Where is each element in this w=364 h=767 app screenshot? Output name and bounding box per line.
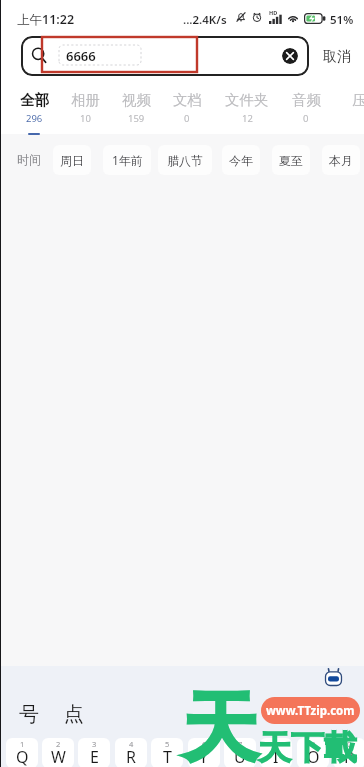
button[interactable]: 今年 bbox=[222, 145, 260, 175]
button[interactable]: 夏至 bbox=[272, 145, 310, 175]
staticText: 7 bbox=[238, 739, 243, 749]
staticText: 号 bbox=[19, 702, 39, 727]
staticText: U bbox=[234, 746, 246, 767]
staticText: 上午11:22 bbox=[17, 11, 75, 28]
button[interactable]: 7 bbox=[224, 738, 256, 767]
staticText: 相册 bbox=[71, 91, 100, 109]
staticText: 音频 bbox=[292, 91, 321, 109]
button[interactable]: 文件夹 bbox=[220, 91, 274, 133]
staticText: T bbox=[163, 746, 172, 767]
button[interactable]: 周日 bbox=[53, 145, 91, 175]
staticText: 1年前 bbox=[112, 152, 143, 168]
staticText: HD bbox=[269, 9, 278, 16]
staticText: 点 bbox=[64, 702, 84, 727]
staticText: 12 bbox=[242, 112, 253, 125]
staticText: I bbox=[273, 746, 279, 767]
staticText: ...2.4K/s bbox=[183, 12, 227, 28]
button[interactable]: 音频 bbox=[279, 91, 333, 133]
staticText: R bbox=[126, 746, 136, 767]
staticText: 本月 bbox=[329, 153, 353, 168]
button[interactable]: 文档 bbox=[160, 91, 214, 133]
staticText: 159 bbox=[128, 112, 145, 125]
staticText: 6 bbox=[202, 739, 207, 749]
staticText: 8 bbox=[274, 739, 279, 749]
staticText: 文件夹 bbox=[225, 91, 269, 109]
button[interactable]: 6666 bbox=[21, 36, 309, 76]
staticText: Y bbox=[199, 746, 209, 767]
staticText: 今年 bbox=[229, 153, 253, 168]
button[interactable]: 9 bbox=[297, 738, 329, 767]
button[interactable]: 全部 bbox=[7, 91, 61, 135]
staticText: 10 bbox=[80, 112, 91, 125]
staticText: 文档 bbox=[173, 91, 202, 109]
button[interactable]: 4 bbox=[115, 738, 147, 767]
button[interactable]: 号 bbox=[19, 702, 39, 727]
staticText: 周日 bbox=[60, 153, 84, 168]
staticText: W bbox=[51, 746, 66, 767]
staticText: 296 bbox=[26, 112, 43, 125]
staticText: 3 bbox=[92, 739, 97, 749]
staticText: 腊八节 bbox=[167, 153, 203, 168]
staticText: 视频 bbox=[122, 91, 151, 109]
staticText: 天下載 bbox=[258, 727, 357, 767]
staticText: 取消 bbox=[323, 48, 351, 66]
staticText: 51% bbox=[330, 12, 354, 28]
button[interactable]: 5 bbox=[151, 738, 183, 767]
staticText: 全部 bbox=[20, 91, 49, 109]
staticText: 时间 bbox=[17, 152, 41, 167]
button[interactable]: 视频 bbox=[109, 91, 163, 133]
staticText: 9 bbox=[311, 739, 316, 749]
button[interactable]: 6 bbox=[188, 738, 220, 767]
staticText: E bbox=[90, 746, 99, 767]
button[interactable]: Clear bbox=[282, 48, 298, 64]
staticText: 天 bbox=[182, 681, 258, 767]
button[interactable]: 1年前 bbox=[103, 145, 151, 175]
button[interactable]: 3 bbox=[78, 738, 110, 767]
staticText: 0 bbox=[347, 739, 352, 749]
staticText: O bbox=[307, 746, 320, 767]
button[interactable]: 2 bbox=[42, 738, 74, 767]
button[interactable]: 1 bbox=[6, 738, 38, 767]
button[interactable]: 8 bbox=[260, 738, 292, 767]
button[interactable]: 相册 bbox=[58, 91, 112, 133]
button[interactable]: Input method bbox=[323, 667, 344, 689]
button[interactable]: 本月 bbox=[322, 145, 360, 175]
button[interactable]: 0 bbox=[333, 738, 364, 767]
button[interactable]: 取消 bbox=[323, 48, 351, 66]
staticText: 4 bbox=[129, 739, 134, 749]
button[interactable]: 压缩 bbox=[339, 91, 364, 133]
staticText: P bbox=[344, 746, 354, 767]
staticText: 1 bbox=[20, 739, 25, 749]
staticText: Q bbox=[16, 746, 29, 767]
button[interactable]: 点 bbox=[64, 702, 84, 727]
button[interactable]: 腊八节 bbox=[158, 145, 212, 175]
staticText: 夏至 bbox=[279, 153, 303, 168]
staticText: 0 bbox=[303, 112, 309, 125]
staticText: 5 bbox=[165, 739, 170, 749]
staticText: 2 bbox=[56, 739, 61, 749]
staticText: 0 bbox=[184, 112, 190, 125]
staticText: www.TTzip.com bbox=[266, 703, 355, 719]
staticText: 压缩 bbox=[352, 91, 364, 109]
staticText: 6666 bbox=[66, 47, 96, 65]
